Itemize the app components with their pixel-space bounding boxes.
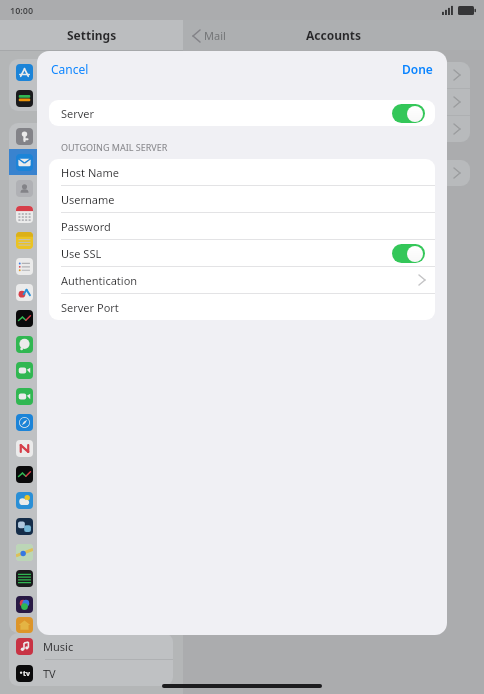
staticText: Host Name [61,165,119,180]
button[interactable] [9,123,173,149]
button[interactable] [9,409,173,435]
button[interactable]: Authentication [49,267,435,293]
button[interactable] [9,435,173,461]
button[interactable] [9,175,173,201]
button[interactable] [201,160,470,186]
button[interactable] [9,565,173,591]
staticText: Mail [204,28,226,43]
button[interactable] [9,201,173,227]
staticText: TV [43,666,56,681]
button[interactable] [9,591,173,617]
staticText: Server [61,106,95,121]
button[interactable] [9,357,173,383]
button[interactable]: Done [388,55,447,83]
button[interactable] [9,149,173,175]
staticText: OUTGOING MAIL SERVER [61,141,168,153]
staticText: Music [43,639,74,654]
button[interactable]: tv [9,660,173,686]
button[interactable] [9,253,173,279]
button[interactable]: Mail [193,28,226,43]
staticText: Accounts [306,27,362,43]
staticText: Use SSL [61,246,102,261]
button[interactable]: Use SSL [49,240,435,266]
button[interactable] [9,279,173,305]
staticText: Username [61,192,115,207]
button[interactable]: Toggle on [392,104,425,123]
button[interactable] [9,85,173,111]
staticText: Settings [67,27,117,43]
button[interactable] [9,383,173,409]
button[interactable]: Music [9,633,173,659]
button[interactable] [201,89,470,115]
other: Authentication options [419,275,425,285]
button[interactable] [201,62,470,88]
staticText: Cancel [51,61,89,77]
staticText: Done [402,61,433,77]
button[interactable] [9,461,173,487]
button[interactable]: Password [49,213,435,239]
staticText: 10:00 [10,4,34,16]
button[interactable] [9,227,173,253]
staticText: Password [61,219,111,234]
button[interactable] [9,539,173,565]
button[interactable]: Host Name [49,159,435,185]
button[interactable] [9,513,173,539]
button[interactable]: Server Port [49,294,435,320]
staticText: Server Port [61,300,119,315]
button[interactable] [201,116,470,142]
button[interactable]: Toggle on [392,244,425,263]
button[interactable] [9,331,173,357]
button[interactable] [9,59,173,85]
button[interactable]: Server [49,100,435,126]
button[interactable]: Username [49,186,435,212]
button[interactable] [9,487,173,513]
button[interactable] [9,617,173,633]
staticText: Authentication [61,273,138,288]
button[interactable] [9,305,173,331]
staticText: tv [23,669,31,679]
button[interactable]: Cancel [37,55,103,83]
